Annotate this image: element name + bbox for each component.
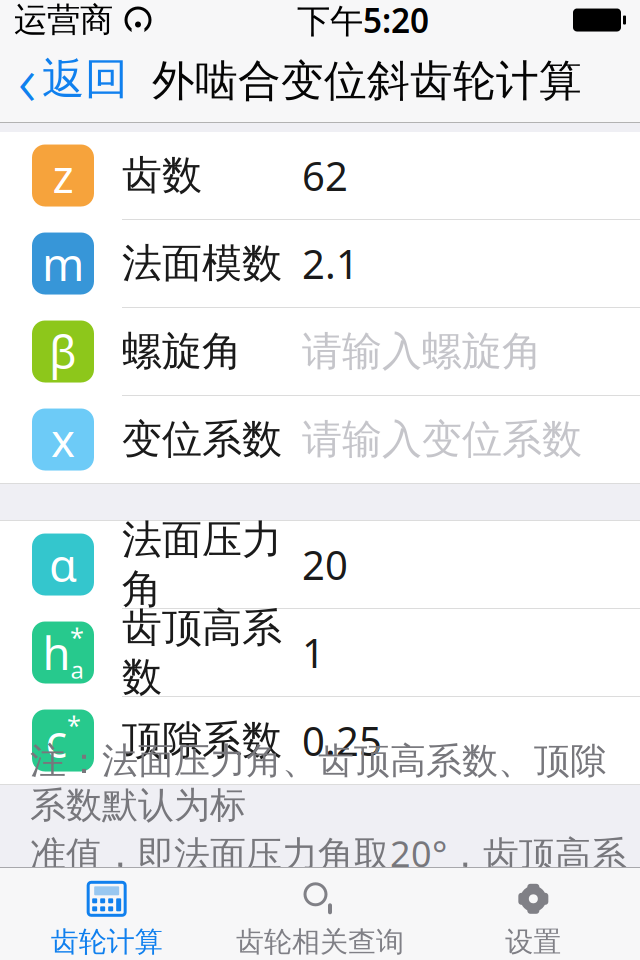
staticText: 螺旋角	[122, 327, 242, 376]
staticText: 齿轮相关查询	[236, 925, 404, 959]
staticText: 准值，即法面压力角取20°，齿顶高系数取1，顶隙	[30, 829, 627, 925]
button[interactable]: h	[0, 609, 640, 697]
staticText: 注：法面压力角、齿顶高系数、顶隙系数默认为标	[30, 739, 606, 827]
staticText: 法面模数	[122, 239, 282, 288]
staticText: 返回	[42, 53, 128, 105]
staticText: c	[45, 710, 67, 771]
staticText: *	[67, 708, 81, 741]
staticText: x	[51, 409, 75, 470]
staticText: 法面压力角	[122, 515, 282, 614]
staticText: 0.25	[302, 714, 382, 767]
staticText: 齿轮计算	[51, 925, 163, 959]
staticText: 运营商	[14, 0, 113, 40]
staticText: 齿数	[122, 151, 202, 200]
staticText: 顶隙系数	[122, 716, 282, 765]
staticText: h	[42, 622, 70, 683]
staticText: a	[70, 653, 83, 685]
staticText: *	[70, 620, 84, 653]
button[interactable]: c	[0, 697, 640, 784]
button[interactable]: 设置	[427, 869, 640, 959]
staticText: α	[49, 534, 77, 595]
staticText: 请输入螺旋角	[302, 327, 542, 376]
button[interactable]: m	[0, 220, 640, 308]
staticText: 下午5:20	[297, 0, 429, 42]
staticText: z	[52, 145, 73, 206]
staticText: 变位系数	[122, 415, 282, 464]
staticText: 62	[302, 149, 348, 202]
button[interactable]: β	[0, 308, 640, 396]
staticText: 请输入变位系数	[302, 415, 582, 464]
staticText: 20	[302, 538, 348, 591]
staticText: m	[42, 233, 84, 294]
staticText: 齿顶高系数	[122, 603, 282, 702]
button[interactable]: 齿轮计算	[0, 869, 213, 959]
button[interactable]: α	[0, 521, 640, 609]
staticText: 2.1	[302, 237, 359, 290]
button[interactable]: ‹	[0, 33, 128, 129]
staticText: 1	[302, 626, 325, 679]
staticText: ‹	[18, 33, 36, 125]
button[interactable]: z	[0, 132, 640, 220]
staticText: 外啮合变位斜齿轮计算	[152, 55, 582, 107]
staticText: β	[49, 321, 77, 382]
staticText: 设置	[505, 925, 561, 959]
button[interactable]: 齿轮相关查询	[213, 869, 427, 959]
button[interactable]: x	[0, 396, 640, 483]
